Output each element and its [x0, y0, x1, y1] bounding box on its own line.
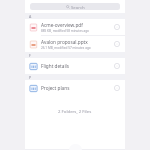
- staticText: A: [29, 14, 32, 19]
- button[interactable]: Acme-overview.pdf: [25, 19, 125, 35]
- staticText: Avalon proposal.pptx: [41, 39, 88, 45]
- staticText: P: [29, 75, 32, 80]
- staticText: Acme-overview.pdf: [41, 22, 83, 28]
- staticText: Search: [71, 4, 85, 10]
- staticText: 2 Folders, 2 Files: [58, 108, 92, 114]
- staticText: F: [29, 53, 31, 58]
- staticText: 26.1 MB, modified 57 minutes ago: [41, 46, 91, 50]
- staticText: Flight details: [41, 63, 111, 69]
- button[interactable]: Avalon proposal.pptx: [25, 36, 125, 52]
- button[interactable]: More options: [113, 40, 121, 48]
- staticText: 885 KB, modified 58 minutes ago: [41, 29, 89, 33]
- button[interactable]: More options: [113, 62, 121, 70]
- button[interactable]: Project plans: [25, 80, 125, 96]
- button[interactable]: Flight details: [25, 58, 125, 74]
- button[interactable]: More options: [113, 23, 121, 31]
- button[interactable]: More options: [113, 84, 121, 92]
- button[interactable]: Search: [30, 3, 120, 10]
- staticText: Project plans: [41, 85, 111, 91]
